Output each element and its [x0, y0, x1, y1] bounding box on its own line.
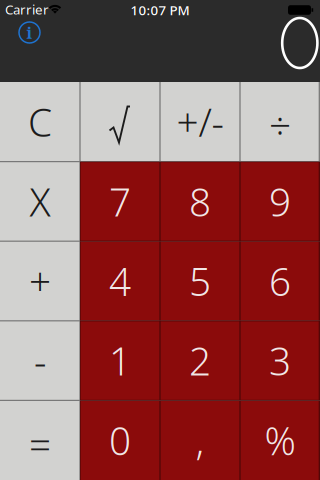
- staticText: 1: [109, 335, 131, 386]
- staticText: +/-: [176, 96, 223, 147]
- button[interactable]: 7: [80, 162, 160, 241]
- staticText: 10:07 PM: [130, 1, 189, 19]
- button[interactable]: 3: [240, 321, 320, 400]
- button[interactable]: 4: [80, 241, 160, 321]
- staticText: 3: [269, 335, 291, 386]
- staticText: ,: [195, 414, 204, 466]
- button[interactable]: 9: [240, 162, 320, 241]
- button[interactable]: Square root: [80, 82, 160, 162]
- button[interactable]: =: [0, 400, 80, 480]
- staticText: 4: [109, 255, 131, 307]
- staticText: 7: [109, 176, 131, 227]
- staticText: Carrier: [5, 0, 49, 18]
- button[interactable]: 5: [160, 241, 240, 321]
- button[interactable]: +/-: [160, 82, 240, 162]
- button[interactable]: ,: [160, 400, 240, 480]
- button[interactable]: %: [240, 400, 320, 480]
- button[interactable]: 0: [80, 400, 160, 480]
- button[interactable]: -: [0, 321, 80, 400]
- button[interactable]: 6: [240, 241, 320, 321]
- button[interactable]: 8: [160, 162, 240, 241]
- staticText: %: [264, 414, 295, 466]
- staticText: C: [28, 96, 52, 147]
- button[interactable]: 1: [80, 321, 160, 400]
- staticText: 5: [189, 255, 211, 307]
- staticText: ÷: [269, 99, 291, 150]
- staticText: +: [29, 255, 51, 307]
- staticText: X: [29, 176, 50, 227]
- staticText: 6: [269, 255, 291, 307]
- staticText: 9: [269, 176, 291, 227]
- staticText: 0: [109, 414, 131, 466]
- button[interactable]: C: [0, 82, 80, 162]
- button[interactable]: +: [0, 241, 80, 321]
- staticText: 2: [189, 335, 211, 386]
- button[interactable]: X: [0, 162, 80, 241]
- staticText: -: [34, 335, 46, 386]
- button[interactable]: ÷: [240, 82, 320, 162]
- button[interactable]: 2: [160, 321, 240, 400]
- staticText: 8: [189, 176, 211, 227]
- button[interactable]: Info: [19, 22, 40, 43]
- staticText: =: [29, 418, 51, 470]
- staticText: i: [26, 22, 32, 43]
